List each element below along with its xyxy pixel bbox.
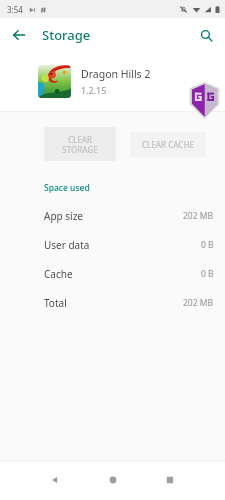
staticText: Storage <box>42 26 91 44</box>
button[interactable]: CLEAR STORAGE <box>44 127 116 161</box>
button[interactable]: Total <box>0 288 225 317</box>
button[interactable]: Back <box>42 467 68 493</box>
staticText: 0 B <box>201 239 214 251</box>
button[interactable]: GameGuardian overlay <box>188 82 221 119</box>
button[interactable]: Dragon Hills 2 <box>0 52 225 111</box>
staticText: 1.2.15 <box>81 84 107 96</box>
staticText: 0 B <box>201 268 214 280</box>
staticText: User data <box>44 238 90 252</box>
staticText: Cache <box>44 267 73 281</box>
staticText: App size <box>44 209 83 223</box>
button[interactable]: User data <box>0 230 225 259</box>
button[interactable]: App size <box>0 201 225 230</box>
staticText: Space used <box>44 182 90 194</box>
button[interactable]: Home <box>100 467 126 493</box>
staticText: CLEAR STORAGE <box>62 134 98 155</box>
button[interactable]: Recent apps <box>157 467 183 493</box>
staticText: Total <box>44 296 67 310</box>
button[interactable]: Cache <box>0 259 225 288</box>
staticText: 202 MB <box>183 297 214 309</box>
staticText: 3:54 <box>7 4 23 15</box>
staticText: Dragon Hills 2 <box>81 67 151 81</box>
button[interactable]: Search <box>191 20 221 50</box>
staticText: CLEAR CACHE <box>142 139 194 150</box>
button[interactable]: Back <box>4 20 34 50</box>
staticText: 202 MB <box>183 210 214 222</box>
button[interactable]: CLEAR CACHE <box>130 132 206 157</box>
